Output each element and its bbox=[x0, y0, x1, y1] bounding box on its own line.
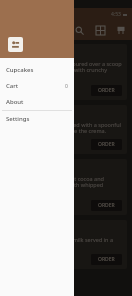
button[interactable]: Filter bbox=[93, 23, 107, 37]
button[interactable]: Search bbox=[72, 23, 86, 37]
staticText: Rich dark espresso marked with a spoonfu… bbox=[10, 121, 122, 135]
button[interactable]: Cart bbox=[114, 23, 128, 37]
staticText: 0 bbox=[65, 83, 68, 90]
staticText: ORDER bbox=[98, 141, 115, 148]
button[interactable]: ORDER bbox=[91, 200, 122, 211]
staticText: Affogato bbox=[10, 48, 43, 58]
staticText: 4:53 bbox=[111, 11, 121, 18]
staticText: Cart bbox=[6, 82, 19, 90]
staticText: Macchiato bbox=[10, 109, 49, 119]
staticText: ORDER bbox=[98, 202, 115, 209]
button[interactable]: Cortado bbox=[5, 220, 127, 269]
button[interactable]: Mocha bbox=[5, 159, 127, 215]
staticText: Settings bbox=[6, 115, 30, 123]
staticText: ORDER bbox=[98, 87, 115, 94]
button[interactable]: Affogato bbox=[5, 44, 127, 100]
button[interactable]: ORDER bbox=[91, 254, 122, 265]
staticText: Cupcakes bbox=[6, 66, 34, 74]
staticText: Espresso cut with warm milk served in a … bbox=[10, 236, 122, 250]
button[interactable]: Macchiato bbox=[5, 105, 127, 154]
staticText: ORDER bbox=[98, 256, 115, 263]
button[interactable]: ORDER bbox=[91, 139, 122, 150]
button[interactable]: About bbox=[0, 94, 74, 110]
staticText: About bbox=[6, 98, 24, 106]
button[interactable]: ORDER bbox=[91, 85, 122, 96]
button[interactable]: Settings bbox=[0, 111, 74, 127]
button[interactable]: Cart bbox=[0, 78, 74, 94]
staticText: A shot of hot espresso poured over a sco… bbox=[10, 60, 122, 81]
button[interactable]: Cupcakes bbox=[0, 62, 74, 78]
staticText: Espresso with bittersweet cocoa and stea… bbox=[10, 175, 122, 196]
